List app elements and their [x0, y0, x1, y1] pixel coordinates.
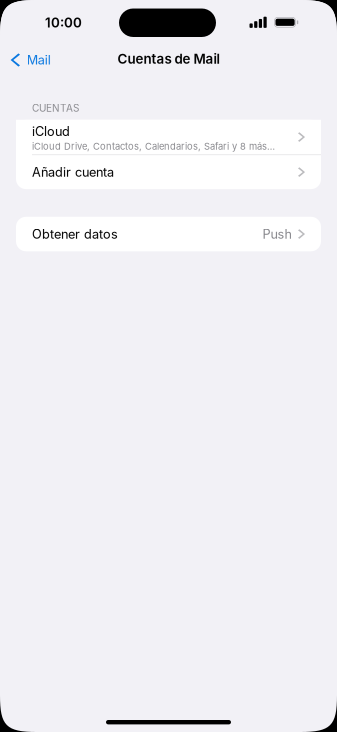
staticText: Push	[262, 226, 291, 242]
staticText: Cuentas de Mail	[117, 51, 219, 67]
staticText: CUENTAS	[32, 102, 79, 114]
button[interactable]: Añadir cuenta	[16, 155, 321, 189]
staticText: 10:00	[45, 14, 82, 31]
staticText: Mail	[27, 52, 51, 68]
button[interactable]: Mail	[0, 46, 84, 74]
staticText: iCloud Drive, Contactos, Calendarios, Sa…	[32, 141, 275, 152]
button[interactable]: Obtener datos	[16, 217, 321, 251]
button[interactable]: iCloud	[16, 120, 321, 154]
staticText: Obtener datos	[32, 226, 118, 242]
staticText: iCloud	[32, 124, 70, 139]
staticText: Añadir cuenta	[32, 164, 114, 180]
